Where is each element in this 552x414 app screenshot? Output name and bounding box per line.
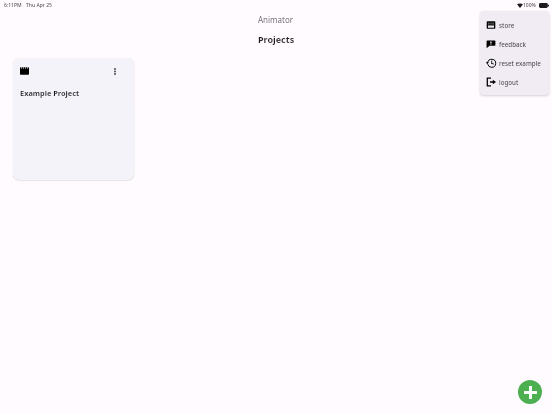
staticText: 100%	[523, 2, 536, 9]
staticText: Example Project	[20, 88, 80, 98]
staticText: 6:11PM	[4, 2, 22, 9]
button[interactable]: feedback	[480, 34, 549, 53]
button[interactable]: store	[480, 15, 549, 34]
button[interactable]: More options	[13, 58, 134, 180]
staticText: reset example	[499, 59, 541, 67]
staticText: Thu Apr 25	[26, 2, 52, 9]
staticText: Animator	[258, 14, 294, 25]
button[interactable]: logout	[480, 72, 549, 91]
staticText: logout	[499, 78, 519, 86]
button[interactable]: reset example	[480, 53, 549, 72]
staticText: store	[499, 21, 515, 29]
button[interactable]: Add project	[518, 380, 542, 404]
staticText: feedback	[499, 40, 527, 48]
staticText: Projects	[258, 33, 295, 45]
button[interactable]: More options	[105, 62, 124, 81]
